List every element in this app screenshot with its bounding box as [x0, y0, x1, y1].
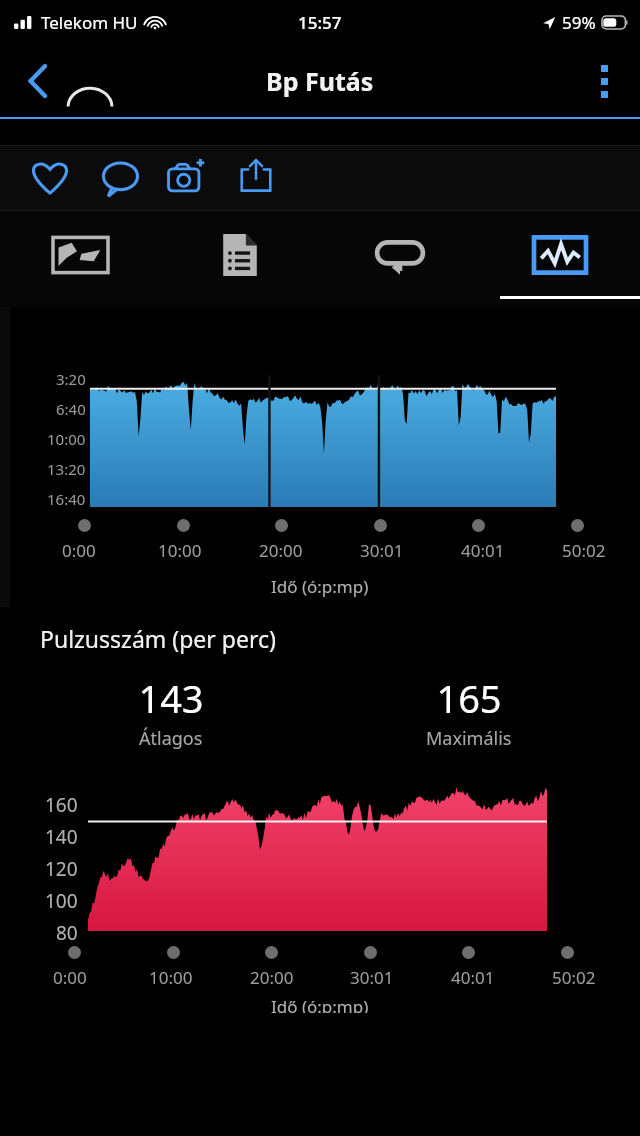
staticText: 3:20	[56, 369, 86, 389]
staticText: Pulzusszám (per perc)	[40, 623, 276, 654]
staticText: 140	[45, 824, 78, 850]
staticText: 6:40	[56, 399, 86, 419]
button[interactable]: Back	[10, 53, 66, 109]
button[interactable]: Add photo	[154, 146, 222, 210]
button[interactable]: Like	[18, 146, 86, 210]
staticText: 0:00	[62, 539, 96, 562]
staticText: 10:00	[149, 966, 193, 989]
staticText: 16:40	[47, 489, 86, 509]
staticText: 80	[56, 920, 78, 946]
staticText: 120	[45, 856, 78, 882]
button[interactable]: More options	[576, 53, 632, 109]
staticText: 143	[138, 672, 204, 724]
button[interactable]: Laps	[320, 211, 480, 299]
staticText: 50:02	[562, 539, 606, 562]
staticText: 20:00	[250, 966, 294, 989]
staticText: 100	[45, 888, 78, 914]
staticText: 13:20	[47, 459, 86, 479]
staticText: Idő (ó:p:mp)	[271, 575, 369, 598]
button[interactable]: Map	[0, 211, 160, 299]
staticText: 0:00	[53, 966, 87, 989]
staticText: 10:00	[158, 539, 202, 562]
staticText: Telekom HU	[41, 11, 138, 34]
staticText: Idő (ó:p:mp)	[271, 995, 369, 1013]
staticText: 15:57	[298, 11, 342, 34]
staticText: 30:01	[360, 539, 404, 562]
staticText: 160	[45, 792, 78, 818]
button[interactable]: Share	[222, 146, 290, 210]
staticText: 165	[436, 672, 502, 724]
button[interactable]: Charts	[480, 211, 640, 299]
staticText: Bp Futás	[266, 64, 374, 98]
staticText: 59%	[562, 11, 596, 34]
staticText: Átlagos	[139, 726, 203, 751]
button[interactable]: Comment	[86, 146, 154, 210]
staticText: 10:00	[47, 429, 86, 449]
staticText: 40:01	[461, 539, 505, 562]
staticText: Maximális	[426, 726, 512, 751]
staticText: 50:02	[552, 966, 596, 989]
button[interactable]: Details	[160, 211, 320, 299]
staticText: 30:01	[350, 966, 394, 989]
staticText: 40:01	[451, 966, 495, 989]
staticText: 20:00	[259, 539, 303, 562]
